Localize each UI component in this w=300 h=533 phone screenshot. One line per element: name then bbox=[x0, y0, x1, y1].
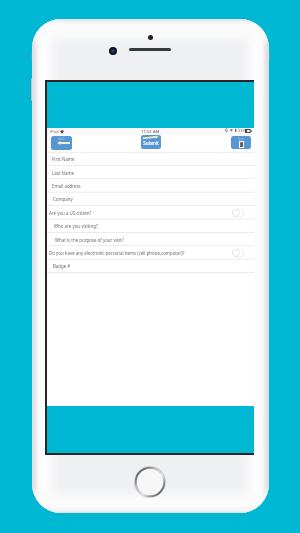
button[interactable]: Back bbox=[51, 136, 72, 150]
button[interactable]: Last Name bbox=[47, 166, 254, 179]
staticText: Submit bbox=[143, 140, 159, 146]
button[interactable]: Submit bbox=[141, 135, 161, 149]
staticText: Company bbox=[53, 196, 73, 202]
staticText: iPad bbox=[50, 129, 59, 135]
staticText: Are you a US citizen? bbox=[49, 210, 92, 216]
button[interactable]: What is the purpose of your visit? bbox=[47, 233, 254, 246]
button[interactable]: Badge # bbox=[47, 259, 254, 272]
staticText: First Name bbox=[52, 156, 75, 162]
button[interactable]: First Name bbox=[47, 152, 254, 165]
staticText: Scan bbox=[238, 137, 245, 141]
staticText: Who are you visiting? bbox=[54, 223, 98, 229]
other: Toggle bbox=[232, 209, 244, 217]
staticText: 23% bbox=[238, 128, 246, 133]
staticText: What is the purpose of your visit? bbox=[55, 237, 124, 243]
button[interactable]: Do you have any electronic personal item… bbox=[47, 246, 254, 259]
staticText: Back bbox=[58, 137, 65, 141]
button[interactable]: Scan badge bbox=[231, 136, 251, 149]
other: Toggle bbox=[232, 249, 244, 257]
staticText: 11:52 AM bbox=[141, 129, 160, 135]
button[interactable]: Company bbox=[47, 192, 254, 205]
staticText: Badge # bbox=[53, 263, 71, 269]
staticText: Last Name bbox=[52, 170, 74, 176]
button[interactable]: Are you a US citizen? bbox=[47, 206, 254, 220]
staticText: Do you have any electronic personal item… bbox=[49, 250, 185, 256]
staticText: Email address bbox=[52, 183, 81, 189]
button[interactable]: Email address bbox=[47, 179, 254, 192]
button[interactable]: Who are you visiting? bbox=[47, 219, 254, 232]
